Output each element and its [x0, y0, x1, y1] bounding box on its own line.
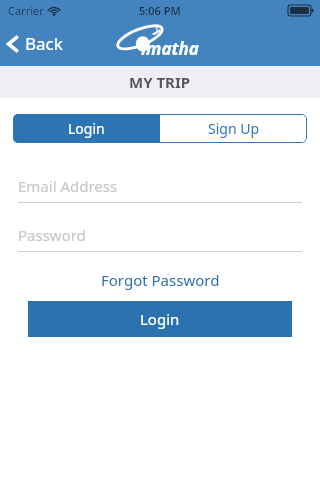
staticText: Sign Up [208, 119, 260, 138]
button[interactable]: Password [18, 222, 302, 248]
button[interactable]: Login [28, 301, 292, 337]
staticText: Login [140, 309, 180, 329]
staticText: Carrier [8, 3, 44, 18]
staticText: Login [68, 119, 105, 138]
staticText: Password [18, 225, 86, 245]
staticText: Back [25, 32, 63, 55]
other: Battery full [288, 5, 314, 16]
staticText: Forgot Password [101, 270, 220, 290]
staticText: Email Address [18, 176, 118, 196]
other: Wi-Fi signal [48, 6, 60, 16]
button[interactable]: Email Address [18, 173, 302, 199]
button[interactable]: Back [0, 26, 75, 61]
staticText: lmatha [141, 37, 199, 60]
button[interactable]: Login [13, 114, 160, 143]
staticText: MY TRIP [129, 72, 191, 92]
button[interactable]: Forgot Password [89, 267, 232, 293]
staticText: 5:06 PM [139, 3, 181, 18]
other: Elmatha logo [112, 24, 220, 62]
button[interactable]: Sign Up [160, 114, 307, 143]
